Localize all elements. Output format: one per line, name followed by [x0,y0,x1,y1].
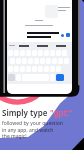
staticText: Simply type [2,107,50,118]
staticText: "gpt:" [50,107,73,118]
staticText: followed by your question in any app, an… [2,120,63,139]
